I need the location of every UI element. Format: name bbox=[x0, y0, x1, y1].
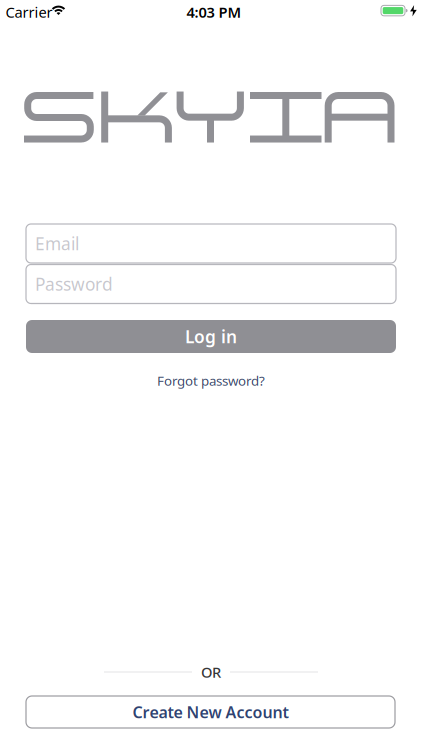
staticText: Password bbox=[35, 272, 113, 295]
button[interactable]: Forgot password? bbox=[157, 372, 265, 389]
staticText: Create New Account bbox=[132, 701, 288, 723]
button[interactable]: Create New Account bbox=[26, 696, 395, 728]
staticText: Log in bbox=[185, 325, 237, 348]
staticText: OR bbox=[201, 662, 221, 682]
staticText: Forgot password? bbox=[157, 372, 265, 389]
staticText: Email bbox=[35, 232, 79, 255]
staticText: Carrier bbox=[5, 2, 52, 22]
button[interactable]: Password bbox=[26, 264, 396, 303]
button[interactable]: Email bbox=[26, 224, 396, 263]
staticText: 4:03 PM bbox=[186, 2, 241, 22]
button[interactable]: Log in bbox=[26, 320, 396, 353]
